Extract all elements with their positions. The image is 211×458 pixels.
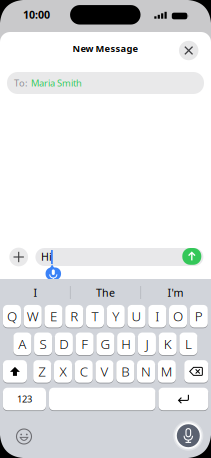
staticText: E xyxy=(50,307,57,325)
staticText: I'm xyxy=(167,285,183,300)
staticText: I xyxy=(33,285,37,300)
button[interactable]: A xyxy=(13,333,31,355)
button[interactable] xyxy=(16,428,32,444)
button[interactable]: C xyxy=(75,360,93,383)
staticText: X xyxy=(59,362,66,380)
staticText: R xyxy=(70,307,78,325)
button[interactable]: To: xyxy=(7,72,204,94)
button[interactable] xyxy=(49,388,155,410)
button[interactable]: S xyxy=(34,333,52,355)
button[interactable]: I xyxy=(148,305,166,327)
button[interactable]: X xyxy=(54,360,72,383)
button[interactable]: D xyxy=(55,333,73,355)
button[interactable] xyxy=(179,41,198,60)
staticText: Y xyxy=(112,307,119,325)
staticText: G xyxy=(100,335,110,353)
staticText: Q xyxy=(7,307,17,325)
button[interactable]: R xyxy=(65,305,83,327)
button[interactable] xyxy=(9,248,28,266)
button[interactable] xyxy=(173,420,204,451)
staticText: 123 xyxy=(17,393,32,405)
button[interactable] xyxy=(182,248,201,265)
button[interactable]: E xyxy=(44,305,62,327)
button[interactable]: J xyxy=(138,333,156,355)
staticText: L xyxy=(185,335,192,353)
staticText: U xyxy=(131,307,141,325)
staticText: I xyxy=(155,307,159,325)
button[interactable]: Z xyxy=(33,360,51,383)
staticText: New Message xyxy=(72,42,138,55)
staticText: S xyxy=(40,335,47,353)
button[interactable]: F xyxy=(76,333,94,355)
button[interactable]: K xyxy=(159,333,177,355)
staticText: H xyxy=(121,335,131,353)
staticText: J xyxy=(145,335,148,353)
staticText: N xyxy=(141,362,151,380)
button[interactable]: L xyxy=(179,333,197,355)
staticText: To: xyxy=(14,77,28,89)
button[interactable]: I xyxy=(0,284,70,301)
button[interactable]: P xyxy=(190,305,208,327)
button[interactable] xyxy=(3,360,27,383)
button[interactable]: U xyxy=(127,305,146,327)
staticText: M xyxy=(161,362,173,380)
staticText: P xyxy=(195,307,203,325)
staticText: Maria Smith xyxy=(31,77,82,89)
button[interactable] xyxy=(158,388,208,410)
staticText: T xyxy=(91,307,98,325)
button[interactable]: Y xyxy=(107,305,125,327)
staticText: V xyxy=(100,362,108,380)
button[interactable]: I'm xyxy=(140,284,210,301)
staticText: W xyxy=(27,307,39,325)
staticText: The xyxy=(96,285,115,300)
staticText: C xyxy=(80,362,88,380)
button[interactable]: The xyxy=(70,284,140,301)
button[interactable] xyxy=(35,248,203,266)
staticText: O xyxy=(173,307,183,325)
button[interactable]: W xyxy=(24,305,42,327)
button[interactable]: M xyxy=(158,360,176,383)
staticText: B xyxy=(121,362,129,380)
staticText: A xyxy=(18,335,26,353)
button[interactable]: 123 xyxy=(3,388,46,410)
button[interactable]: O xyxy=(169,305,187,327)
staticText: Z xyxy=(38,362,46,380)
button[interactable]: H xyxy=(117,333,135,355)
staticText: Hi xyxy=(41,249,52,264)
staticText: D xyxy=(59,335,68,353)
button[interactable]: B xyxy=(116,360,134,383)
staticText: 10:00 xyxy=(23,7,50,22)
staticText: K xyxy=(164,335,172,353)
button[interactable]: Q xyxy=(3,305,21,327)
button[interactable]: T xyxy=(86,305,104,327)
button[interactable] xyxy=(184,360,208,383)
button[interactable]: V xyxy=(95,360,114,383)
button[interactable]: G xyxy=(96,333,114,355)
staticText: F xyxy=(81,335,88,353)
button[interactable]: N xyxy=(137,360,155,383)
